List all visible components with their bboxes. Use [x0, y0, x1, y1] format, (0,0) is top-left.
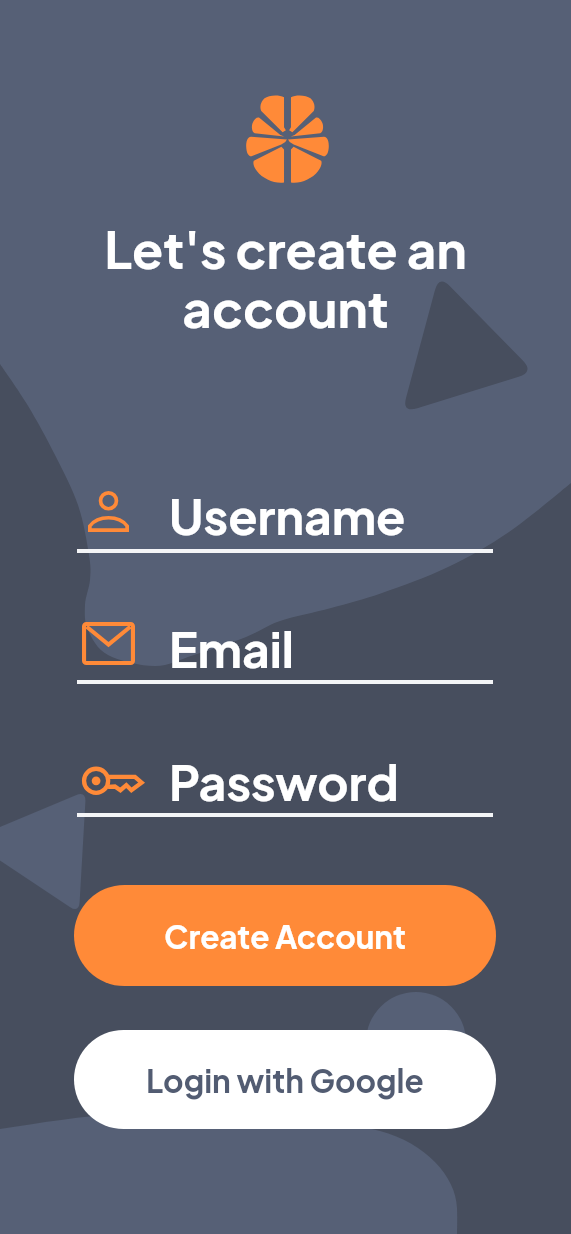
- button[interactable]: [74, 618, 496, 684]
- staticText: Login with Google: [146, 1060, 424, 1100]
- staticText: Email: [169, 618, 294, 678]
- button[interactable]: Create Account: [74, 885, 496, 986]
- other: Username: [88, 491, 129, 532]
- staticText: Username: [169, 485, 406, 545]
- button[interactable]: [74, 751, 496, 817]
- other: Logo: [243, 90, 332, 188]
- other: Password: [82, 766, 143, 797]
- staticText: Create Account: [164, 916, 407, 956]
- staticText: Password: [169, 751, 399, 811]
- button[interactable]: Login with Google: [74, 1030, 496, 1129]
- other: Email: [82, 622, 135, 665]
- staticText: Let's create an account: [80, 216, 491, 339]
- button[interactable]: [74, 485, 496, 553]
